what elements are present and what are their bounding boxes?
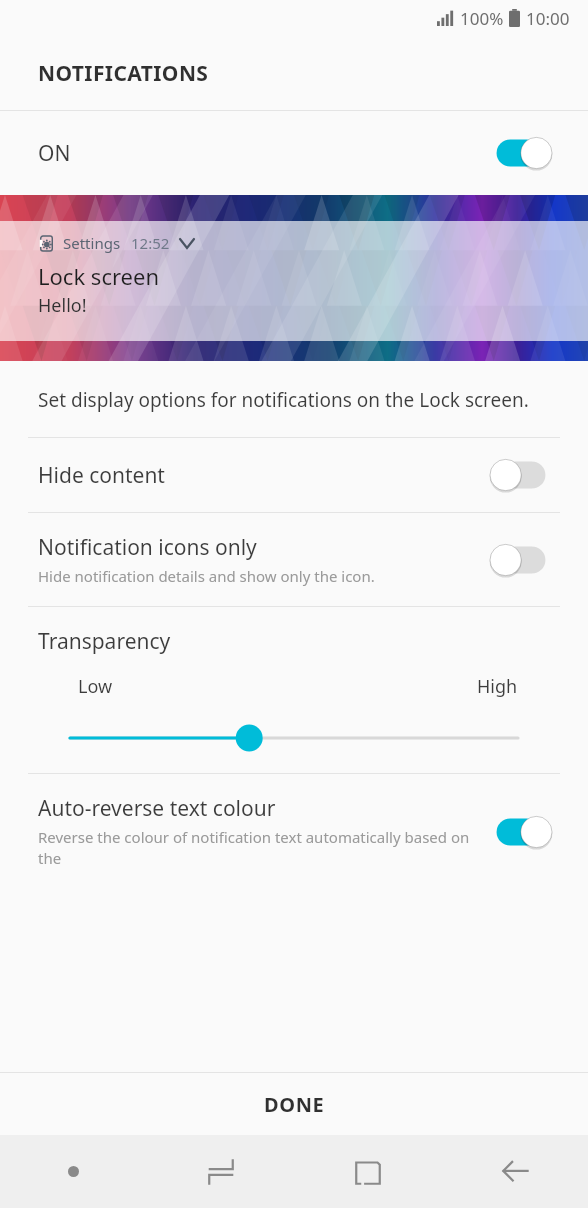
button[interactable]: ON xyxy=(0,111,588,195)
staticText: NOTIFICATIONS xyxy=(38,59,209,88)
staticText: Hello! xyxy=(38,293,87,318)
button[interactable]: Back xyxy=(441,1135,588,1208)
staticText: Settings xyxy=(63,233,121,253)
staticText: 12:52 xyxy=(131,233,170,253)
staticText: Set display options for notifications on… xyxy=(38,387,529,413)
staticText: Transparency xyxy=(38,627,171,656)
staticText: Notification icons only xyxy=(38,533,257,562)
button[interactable]: Notification icons only xyxy=(0,513,588,606)
button[interactable]: Hide content xyxy=(0,438,588,512)
staticText: High xyxy=(477,674,518,699)
button[interactable]: Recents xyxy=(147,1135,294,1208)
staticText: Reverse the colour of notification text … xyxy=(38,827,474,869)
staticText: Auto-reverse text colour xyxy=(38,794,276,823)
button[interactable]: Auto-reverse text colour xyxy=(0,774,588,889)
button[interactable]: DONE xyxy=(0,1073,588,1135)
button[interactable]: Menu xyxy=(0,1135,147,1208)
staticText: ON xyxy=(38,139,490,168)
staticText: Hide notification details and show only … xyxy=(38,566,375,586)
staticText: Lock screen xyxy=(38,261,160,291)
staticText: 10:00 xyxy=(526,7,570,30)
button[interactable] xyxy=(0,721,588,755)
button[interactable]: Home xyxy=(294,1135,441,1208)
staticText: Hide content xyxy=(38,461,165,490)
staticText: Low xyxy=(78,674,113,699)
staticText: 100% xyxy=(460,7,504,30)
staticText: DONE xyxy=(264,1091,325,1118)
